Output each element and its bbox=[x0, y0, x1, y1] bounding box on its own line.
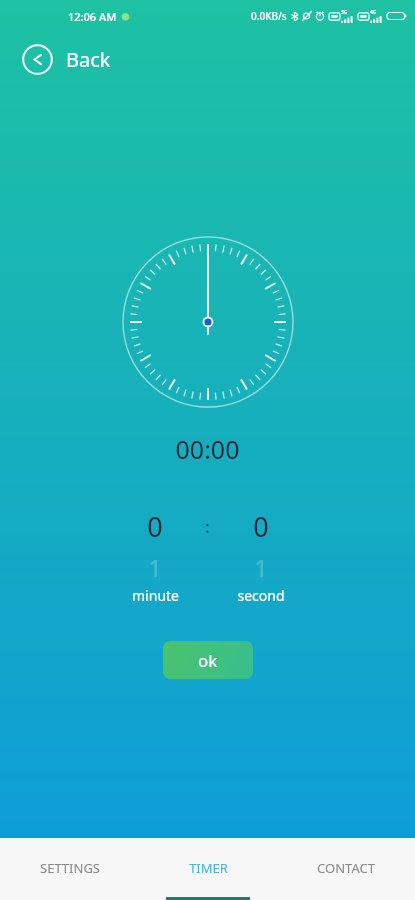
staticText: 12:06 AM bbox=[68, 9, 117, 24]
staticText: 0.0KB/s bbox=[251, 9, 287, 23]
staticText: 0 bbox=[253, 508, 269, 545]
staticText: minute bbox=[132, 586, 179, 605]
staticText: 5G bbox=[341, 9, 348, 16]
staticText: second bbox=[237, 586, 285, 605]
button[interactable]: 0 bbox=[127, 508, 183, 605]
staticText: ok bbox=[198, 649, 218, 672]
other: Back bbox=[22, 44, 53, 75]
button[interactable]: ok bbox=[163, 641, 253, 679]
staticText: : bbox=[0, 516, 415, 538]
staticText: CONTACT bbox=[317, 859, 375, 877]
button[interactable]: TIMER bbox=[139, 838, 277, 897]
button[interactable]: SETTINGS bbox=[0, 838, 139, 897]
staticText: 0 bbox=[147, 508, 163, 545]
staticText: 1 bbox=[254, 551, 268, 584]
staticText: SETTINGS bbox=[40, 859, 100, 877]
button[interactable]: CONTACT bbox=[277, 838, 415, 897]
staticText: TIMER bbox=[189, 859, 228, 877]
staticText: 1 bbox=[148, 551, 162, 584]
staticText: 4G bbox=[370, 9, 377, 16]
staticText: Back bbox=[66, 46, 111, 73]
button[interactable]: Back bbox=[18, 38, 115, 81]
button[interactable]: 0 bbox=[233, 508, 289, 605]
staticText: 00:00 bbox=[0, 432, 415, 466]
